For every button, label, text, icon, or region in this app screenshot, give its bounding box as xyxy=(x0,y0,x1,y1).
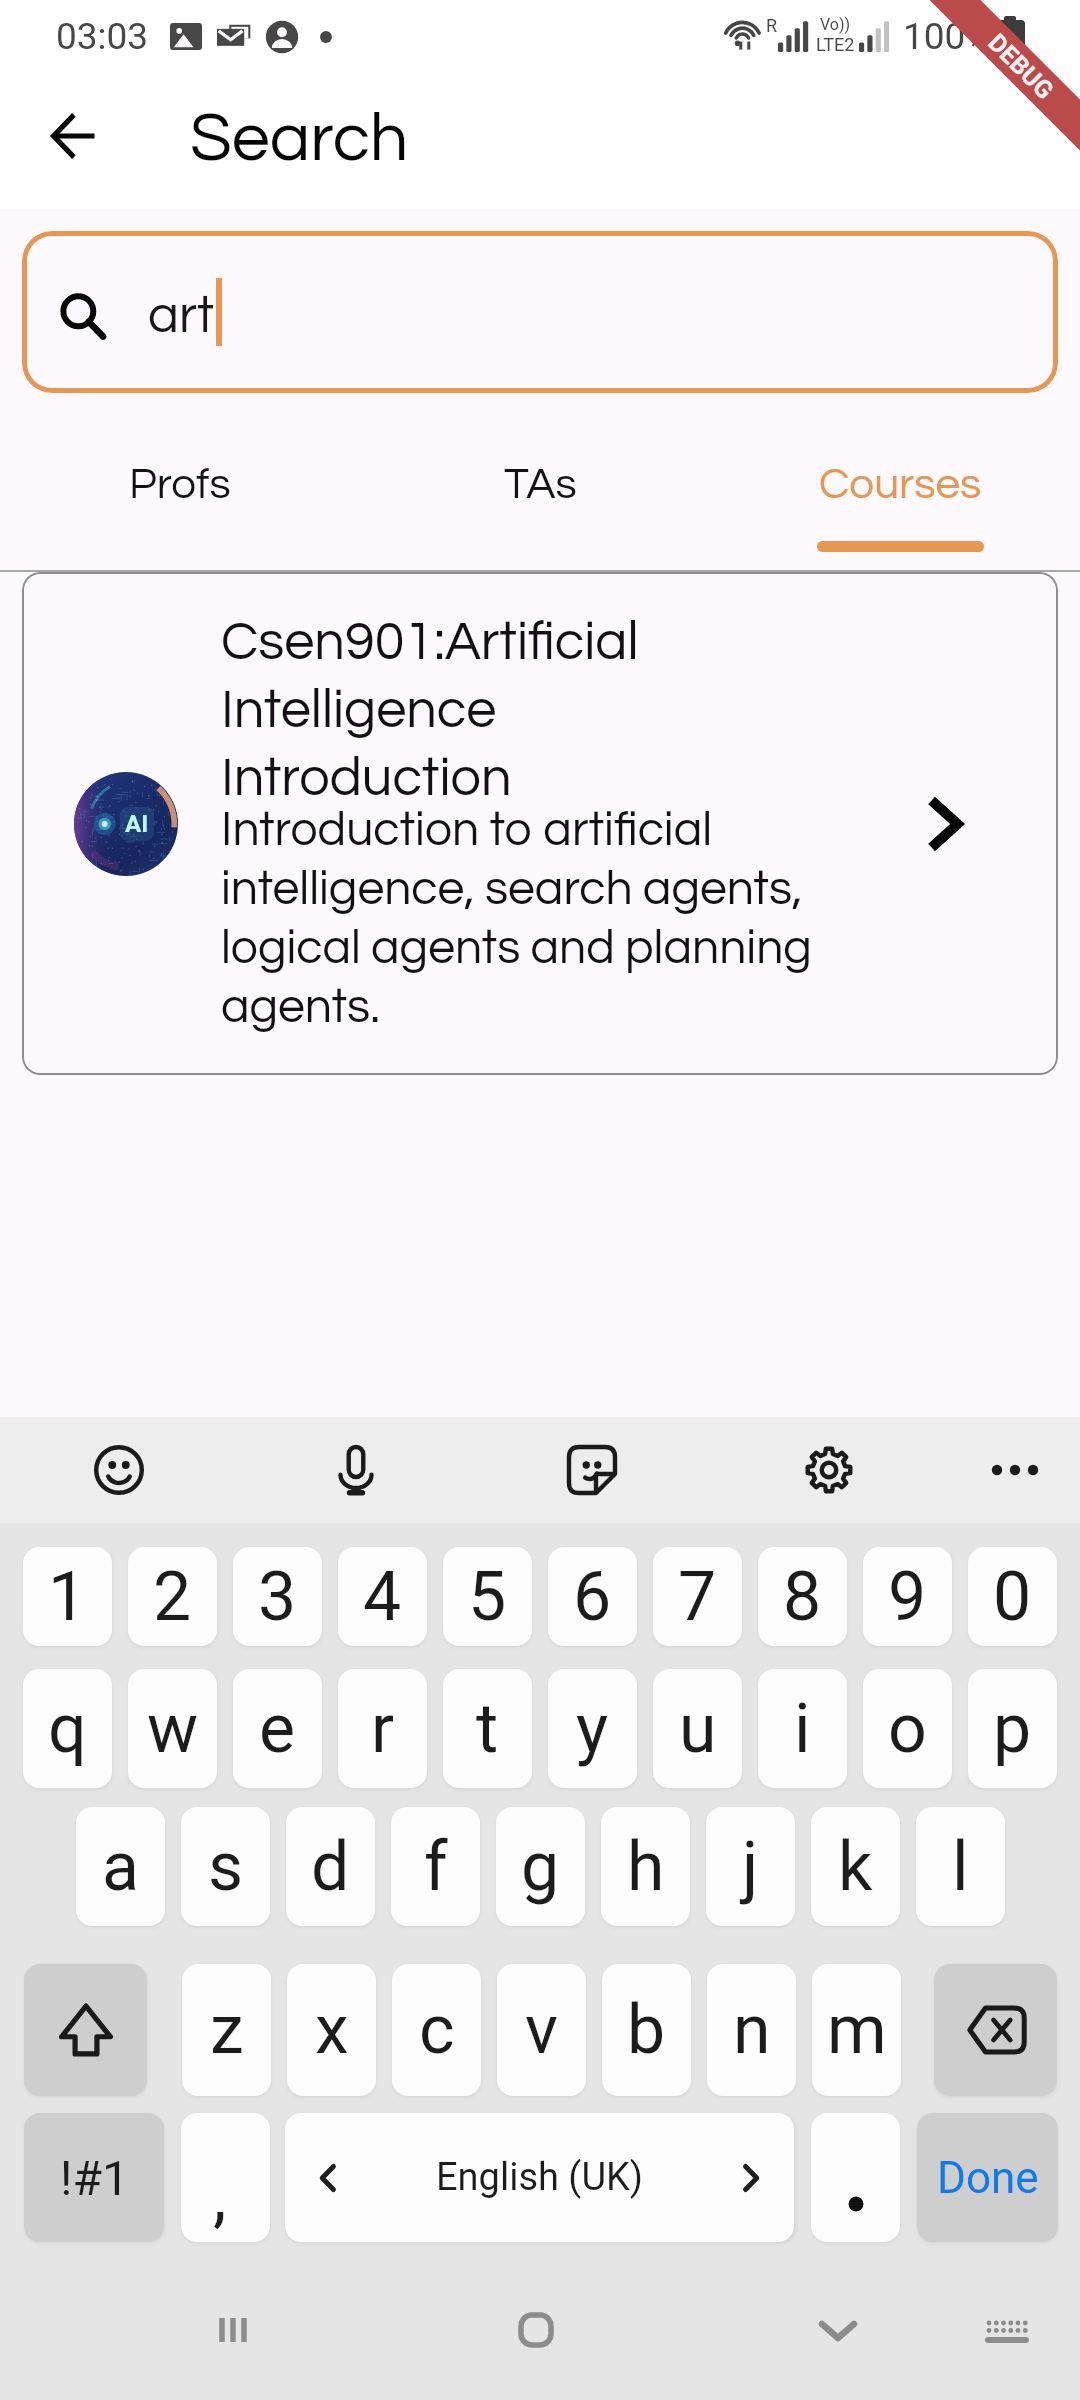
staticText: 9 xyxy=(888,1557,927,1637)
button[interactable]: Courses xyxy=(720,420,1080,570)
button[interactable]: 3 xyxy=(233,1547,322,1646)
button[interactable]: Backspace xyxy=(934,1964,1057,2096)
staticText: q xyxy=(48,1689,87,1769)
staticText: 8 xyxy=(783,1557,822,1637)
staticText: 5 xyxy=(468,1557,507,1637)
button[interactable]: y xyxy=(548,1669,637,1788)
button[interactable]: Recent apps xyxy=(190,2287,276,2373)
button[interactable]: v xyxy=(497,1964,586,2096)
button[interactable]: Profs xyxy=(0,420,360,570)
button[interactable]: b xyxy=(602,1964,691,2096)
button[interactable]: Home xyxy=(493,2287,579,2373)
staticText: s xyxy=(208,1827,244,1907)
staticText: c xyxy=(419,1990,455,2070)
button[interactable]: 9 xyxy=(863,1547,952,1646)
staticText: u xyxy=(679,1689,717,1769)
staticText: Profs xyxy=(129,462,231,507)
staticText: Csen901:Artificial Intelligence Introduc… xyxy=(221,615,639,806)
staticText: 0 xyxy=(993,1557,1032,1637)
button[interactable]: 2 xyxy=(128,1547,217,1646)
staticText: 6 xyxy=(573,1557,612,1637)
button[interactable]: !#1 xyxy=(24,2113,164,2242)
staticText: R xyxy=(766,15,778,36)
button[interactable]: Emoji xyxy=(74,1417,164,1523)
staticText: f xyxy=(424,1827,448,1907)
staticText: 03:03 xyxy=(56,15,149,58)
staticText: v xyxy=(525,1990,558,2070)
staticText: , xyxy=(213,2156,227,2236)
button[interactable]: Shift xyxy=(24,1964,147,2096)
button[interactable]: e xyxy=(233,1669,322,1788)
button[interactable]: z xyxy=(182,1964,271,2096)
staticText: !#1 xyxy=(60,2150,129,2206)
button[interactable]: s xyxy=(181,1807,270,1926)
button[interactable]: Done xyxy=(917,2113,1058,2242)
button[interactable]: o xyxy=(863,1669,952,1788)
staticText: r xyxy=(371,1689,395,1769)
button[interactable]: n xyxy=(707,1964,796,2096)
staticText: d xyxy=(311,1827,350,1907)
button[interactable]: 7 xyxy=(653,1547,742,1646)
button[interactable]: w xyxy=(128,1669,217,1788)
staticText: w xyxy=(147,1689,199,1769)
staticText: l xyxy=(952,1827,969,1907)
staticText: 1 xyxy=(48,1557,87,1637)
button[interactable] xyxy=(811,2113,900,2242)
staticText: Courses xyxy=(819,462,982,507)
button[interactable]: g xyxy=(496,1807,585,1926)
button[interactable]: i xyxy=(758,1669,847,1788)
staticText: i xyxy=(794,1689,811,1769)
staticText: English (UK) xyxy=(436,2155,644,2200)
button[interactable]: , xyxy=(181,2113,270,2242)
button[interactable]: Open course xyxy=(908,788,980,860)
staticText: art xyxy=(148,289,214,343)
button[interactable]: Change keyboard xyxy=(964,2287,1050,2373)
button[interactable]: 8 xyxy=(758,1547,847,1646)
button[interactable]: Voice input xyxy=(311,1417,401,1523)
staticText: AI xyxy=(125,810,149,838)
button[interactable]: TAs xyxy=(360,420,720,570)
button[interactable]: u xyxy=(653,1669,742,1788)
button[interactable]: t xyxy=(443,1669,532,1788)
staticText: x xyxy=(315,1990,349,2070)
button[interactable]: m xyxy=(812,1964,901,2096)
button[interactable]: More options xyxy=(970,1417,1060,1523)
button[interactable]: Stickers xyxy=(547,1417,637,1523)
button[interactable]: 0 xyxy=(968,1547,1057,1646)
button[interactable]: l xyxy=(916,1807,1005,1926)
button[interactable]: p xyxy=(968,1669,1057,1788)
staticText: DEBUG xyxy=(982,28,1059,105)
button[interactable]: 4 xyxy=(338,1547,427,1646)
staticText: LTE2 xyxy=(816,34,855,55)
button[interactable]: d xyxy=(286,1807,375,1926)
button[interactable]: x xyxy=(287,1964,376,2096)
button[interactable]: Settings xyxy=(784,1417,874,1523)
staticText: z xyxy=(210,1990,244,2070)
button[interactable]: r xyxy=(338,1669,427,1788)
button[interactable]: 1 xyxy=(23,1547,112,1646)
button[interactable]: j xyxy=(706,1807,795,1926)
button[interactable]: q xyxy=(23,1669,112,1788)
button[interactable]: h xyxy=(601,1807,690,1926)
button[interactable]: c xyxy=(392,1964,481,2096)
button[interactable]: AI xyxy=(22,572,1058,1075)
button[interactable]: k xyxy=(811,1807,900,1926)
staticText: g xyxy=(521,1827,560,1907)
button[interactable]: English (UK) xyxy=(285,2113,794,2242)
staticText: 100% xyxy=(903,15,993,58)
staticText: 7 xyxy=(678,1557,717,1637)
staticText: j xyxy=(742,1827,759,1907)
staticText: m xyxy=(827,1990,887,2070)
button[interactable]: f xyxy=(391,1807,480,1926)
button[interactable]: 6 xyxy=(548,1547,637,1646)
button[interactable]: a xyxy=(76,1807,165,1926)
staticText: y xyxy=(576,1689,609,1769)
button[interactable]: art xyxy=(22,231,1058,393)
button[interactable]: Back xyxy=(33,96,113,176)
staticText: TAs xyxy=(504,462,577,507)
staticText: e xyxy=(259,1689,296,1769)
staticText: o xyxy=(888,1689,927,1769)
button[interactable]: Hide keyboard xyxy=(795,2287,881,2373)
button[interactable]: 5 xyxy=(443,1547,532,1646)
staticText: t xyxy=(476,1689,499,1769)
